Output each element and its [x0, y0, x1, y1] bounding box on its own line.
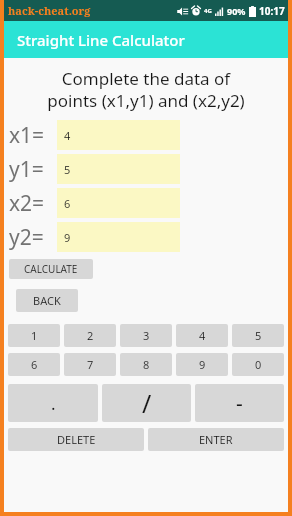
button[interactable]: 3 — [120, 324, 172, 347]
staticText: ENTER — [199, 432, 233, 447]
staticText: x1= — [9, 121, 45, 150]
button[interactable]: 5 — [57, 154, 180, 184]
staticText: . — [51, 392, 56, 415]
staticText: 9 — [199, 357, 206, 372]
staticText: / — [142, 386, 152, 420]
button[interactable]: 2 — [64, 324, 116, 347]
button[interactable]: 0 — [232, 353, 284, 376]
staticText: Complete the data of points (x1,y1) and … — [4, 67, 288, 112]
button[interactable]: 9 — [176, 353, 228, 376]
button[interactable]: 9 — [57, 222, 180, 252]
staticText: 1 — [31, 328, 38, 343]
button[interactable]: BACK — [16, 289, 78, 312]
button[interactable]: 4 — [57, 120, 180, 150]
staticText: 4G — [204, 7, 212, 15]
staticText: 6 — [64, 196, 71, 211]
button[interactable]: 1 — [8, 324, 60, 347]
staticText: 5 — [255, 328, 262, 343]
staticText: - — [236, 389, 243, 418]
staticText: Straight Line Calculator — [17, 30, 185, 50]
button[interactable]: 7 — [64, 353, 116, 376]
staticText: 9 — [64, 230, 71, 245]
button[interactable]: ENTER — [148, 428, 284, 451]
button[interactable]: Divide — [102, 384, 191, 422]
staticText: x2= — [9, 189, 45, 218]
button[interactable]: 4 — [176, 324, 228, 347]
staticText: 7 — [87, 357, 94, 372]
staticText: DELETE — [57, 432, 96, 447]
button[interactable]: Decimal point — [8, 384, 98, 422]
staticText: 0 — [255, 357, 262, 372]
staticText: 8 — [143, 357, 150, 372]
staticText: 90% — [227, 5, 246, 17]
staticText: 6 — [31, 357, 38, 372]
staticText: hack-cheat.org — [8, 3, 91, 18]
button[interactable]: 5 — [232, 324, 284, 347]
staticText: 4 — [64, 128, 71, 143]
button[interactable]: Minus — [195, 384, 284, 422]
button[interactable]: CALCULATE — [9, 259, 93, 279]
button[interactable]: DELETE — [8, 428, 144, 451]
staticText: 2 — [87, 328, 94, 343]
staticText: 5 — [64, 162, 71, 177]
staticText: y1= — [9, 155, 44, 184]
staticText: y2= — [9, 223, 44, 252]
button[interactable]: 8 — [120, 353, 172, 376]
staticText: 10:17 — [259, 4, 285, 18]
staticText: BACK — [33, 293, 61, 308]
button[interactable]: 6 — [8, 353, 60, 376]
staticText: 3 — [143, 328, 150, 343]
staticText: 4 — [199, 328, 206, 343]
button[interactable]: 6 — [57, 188, 180, 218]
staticText: CALCULATE — [24, 262, 78, 276]
